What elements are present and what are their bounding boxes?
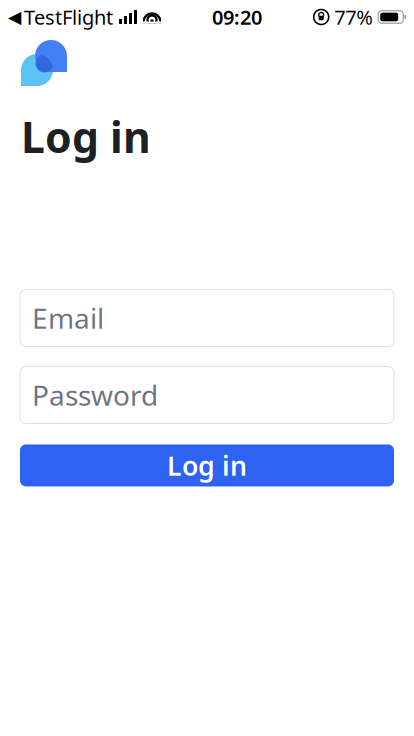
staticText: Password	[32, 376, 158, 413]
staticText: Email	[32, 299, 104, 336]
staticText: TestFlight	[24, 4, 113, 30]
button[interactable]: Password	[20, 366, 394, 423]
staticText: 77%	[334, 4, 373, 30]
button[interactable]: Log in	[20, 444, 394, 486]
staticText: Log in	[21, 108, 151, 165]
staticText: 09:20	[212, 4, 262, 30]
staticText: ◀	[8, 7, 21, 27]
button[interactable]: Email	[20, 289, 394, 346]
staticText: Log in	[167, 448, 247, 483]
